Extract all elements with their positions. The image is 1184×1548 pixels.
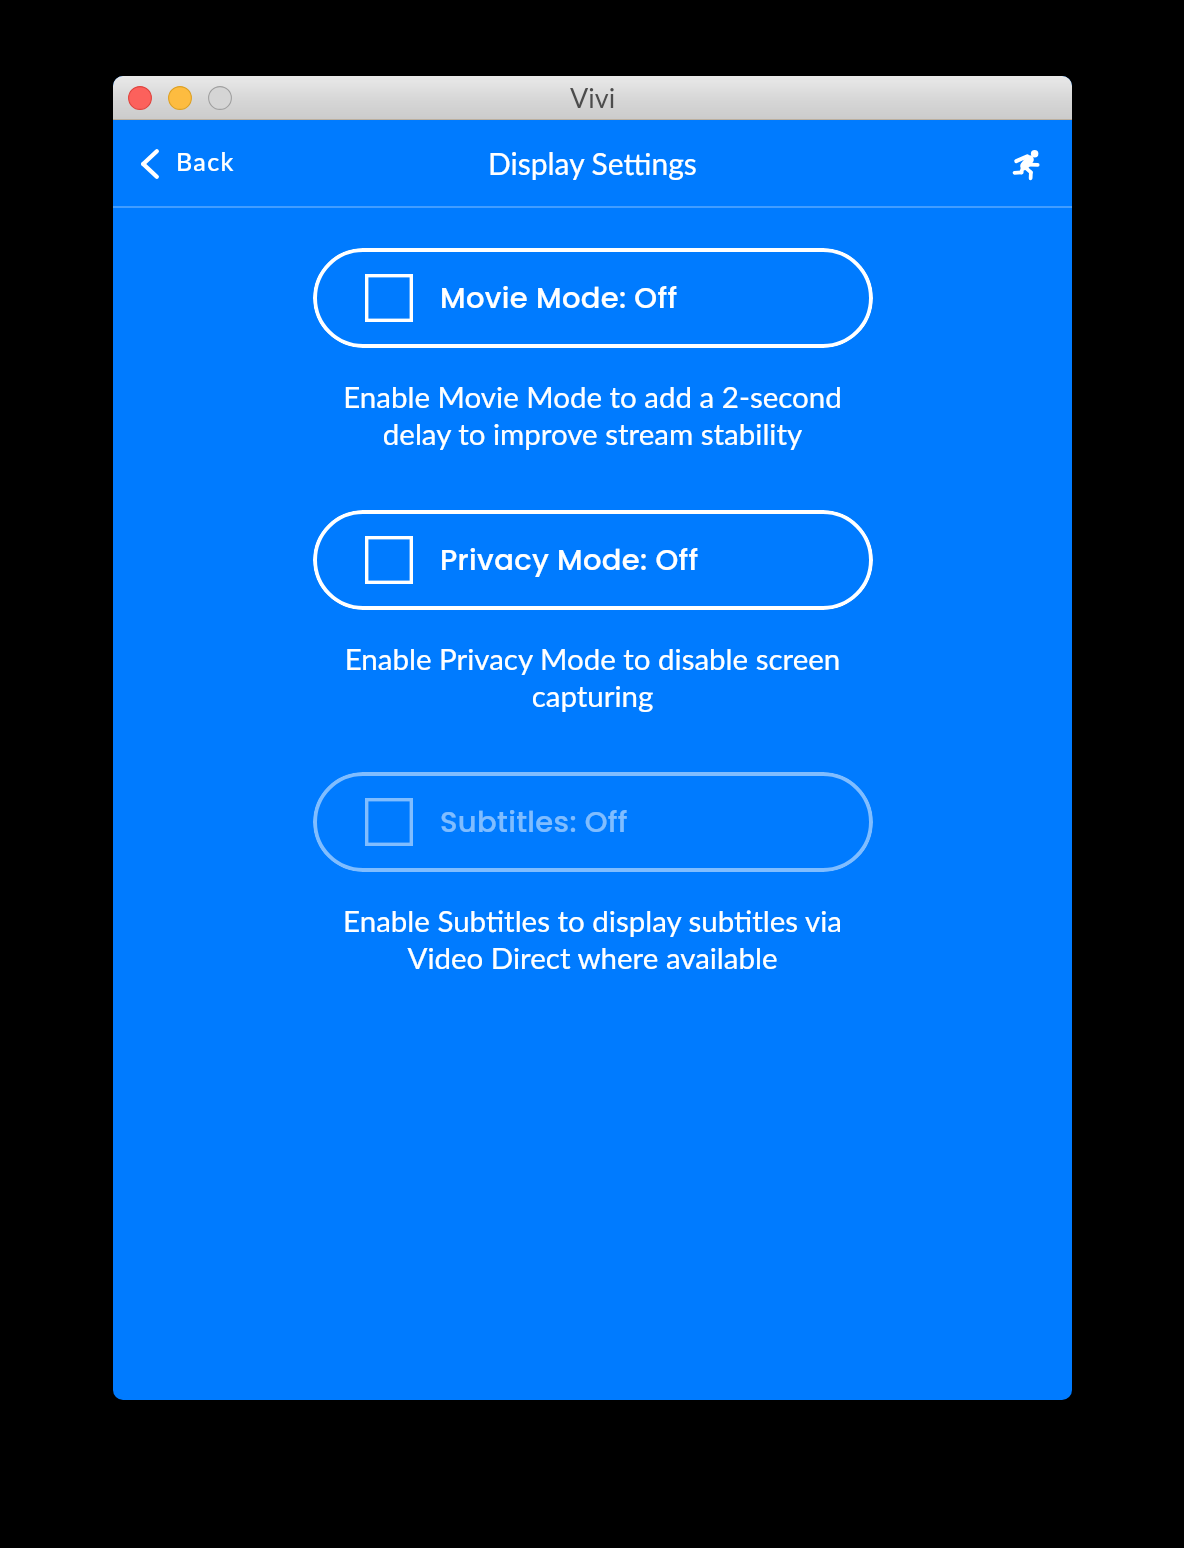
staticText: Privacy Mode: Off (440, 540, 699, 581)
staticText: Movie Mode: Off (440, 278, 678, 319)
staticText: Vivi (570, 81, 616, 113)
staticText: Enable Subtitles to display subtitles vi… (143, 903, 1042, 975)
staticText: Subtitles: Off (440, 802, 628, 843)
button[interactable]: Start presenting (1001, 140, 1049, 188)
staticText: Display Settings (488, 145, 697, 181)
staticText: Enable Privacy Mode to disable screen ca… (143, 641, 1042, 713)
button[interactable]: Movie Mode: Off (313, 248, 873, 348)
button[interactable]: Privacy Mode: Off (313, 510, 873, 610)
staticText: Enable Movie Mode to add a 2-second dela… (143, 379, 1042, 451)
button[interactable]: Back (132, 139, 245, 189)
staticText: Back (176, 146, 235, 176)
button[interactable]: Subtitles: Off (313, 772, 873, 872)
